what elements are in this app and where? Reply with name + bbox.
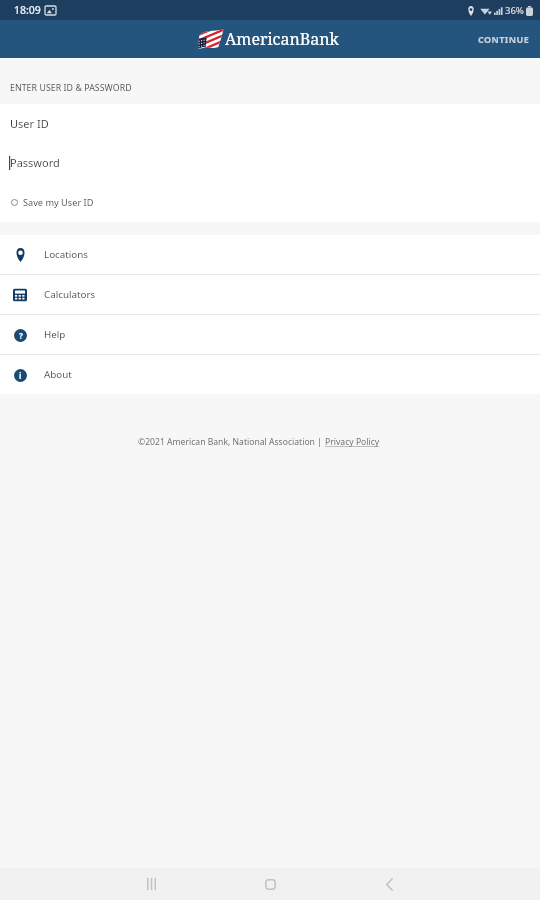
button[interactable]: Back — [349, 868, 429, 900]
staticText: i — [19, 370, 22, 381]
staticText: Locations — [44, 248, 88, 261]
staticText: Password — [10, 155, 60, 170]
button[interactable]: User ID — [0, 104, 540, 143]
staticText: CONTINUE — [478, 33, 530, 45]
staticText: Calculators — [44, 288, 96, 301]
button[interactable]: Home — [230, 868, 310, 900]
button[interactable]: Locations — [0, 235, 540, 274]
button[interactable]: CONTINUE — [468, 25, 540, 53]
staticText: AmericanBank — [225, 28, 339, 50]
button[interactable]: Recent apps — [111, 868, 191, 900]
staticText: About — [44, 368, 72, 381]
staticText: User ID — [10, 116, 49, 131]
button[interactable]: Password — [0, 143, 540, 182]
staticText: Save my User ID — [23, 196, 94, 209]
button[interactable]: Calculators — [0, 275, 540, 314]
staticText: ENTER USER ID & PASSWORD — [10, 82, 132, 94]
staticText: 18:09 — [14, 3, 41, 17]
staticText: ? — [19, 330, 23, 341]
button[interactable]: i — [0, 355, 540, 394]
button[interactable]: Privacy Policy — [325, 436, 380, 448]
button[interactable]: ? — [0, 315, 540, 354]
staticText: Help — [44, 328, 66, 341]
staticText: ©2021 American Bank, National Associatio… — [138, 436, 325, 448]
button[interactable]: Save my User ID — [9, 190, 96, 215]
staticText: 36% — [505, 4, 524, 17]
